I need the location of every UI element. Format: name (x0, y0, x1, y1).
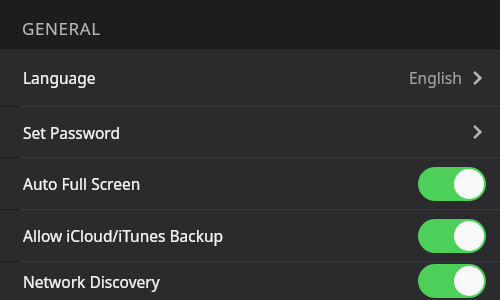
staticText: Auto Full Screen (23, 173, 418, 194)
button[interactable]: Toggle on (418, 264, 486, 298)
staticText: English (409, 67, 462, 88)
staticText: Network Discovery (23, 271, 418, 292)
button[interactable]: Auto Full Screen (0, 158, 500, 209)
button[interactable]: Set Password (0, 107, 500, 157)
button[interactable]: Network Discovery (0, 262, 500, 300)
button[interactable]: Language (0, 49, 500, 106)
staticText: Set Password (23, 122, 468, 143)
staticText: GENERAL (22, 17, 101, 40)
staticText: Language (23, 67, 409, 88)
button[interactable]: Toggle on (418, 219, 486, 253)
staticText: Allow iCloud/iTunes Backup (23, 225, 418, 246)
button[interactable]: Toggle on (418, 167, 486, 201)
button[interactable]: Allow iCloud/iTunes Backup (0, 210, 500, 261)
